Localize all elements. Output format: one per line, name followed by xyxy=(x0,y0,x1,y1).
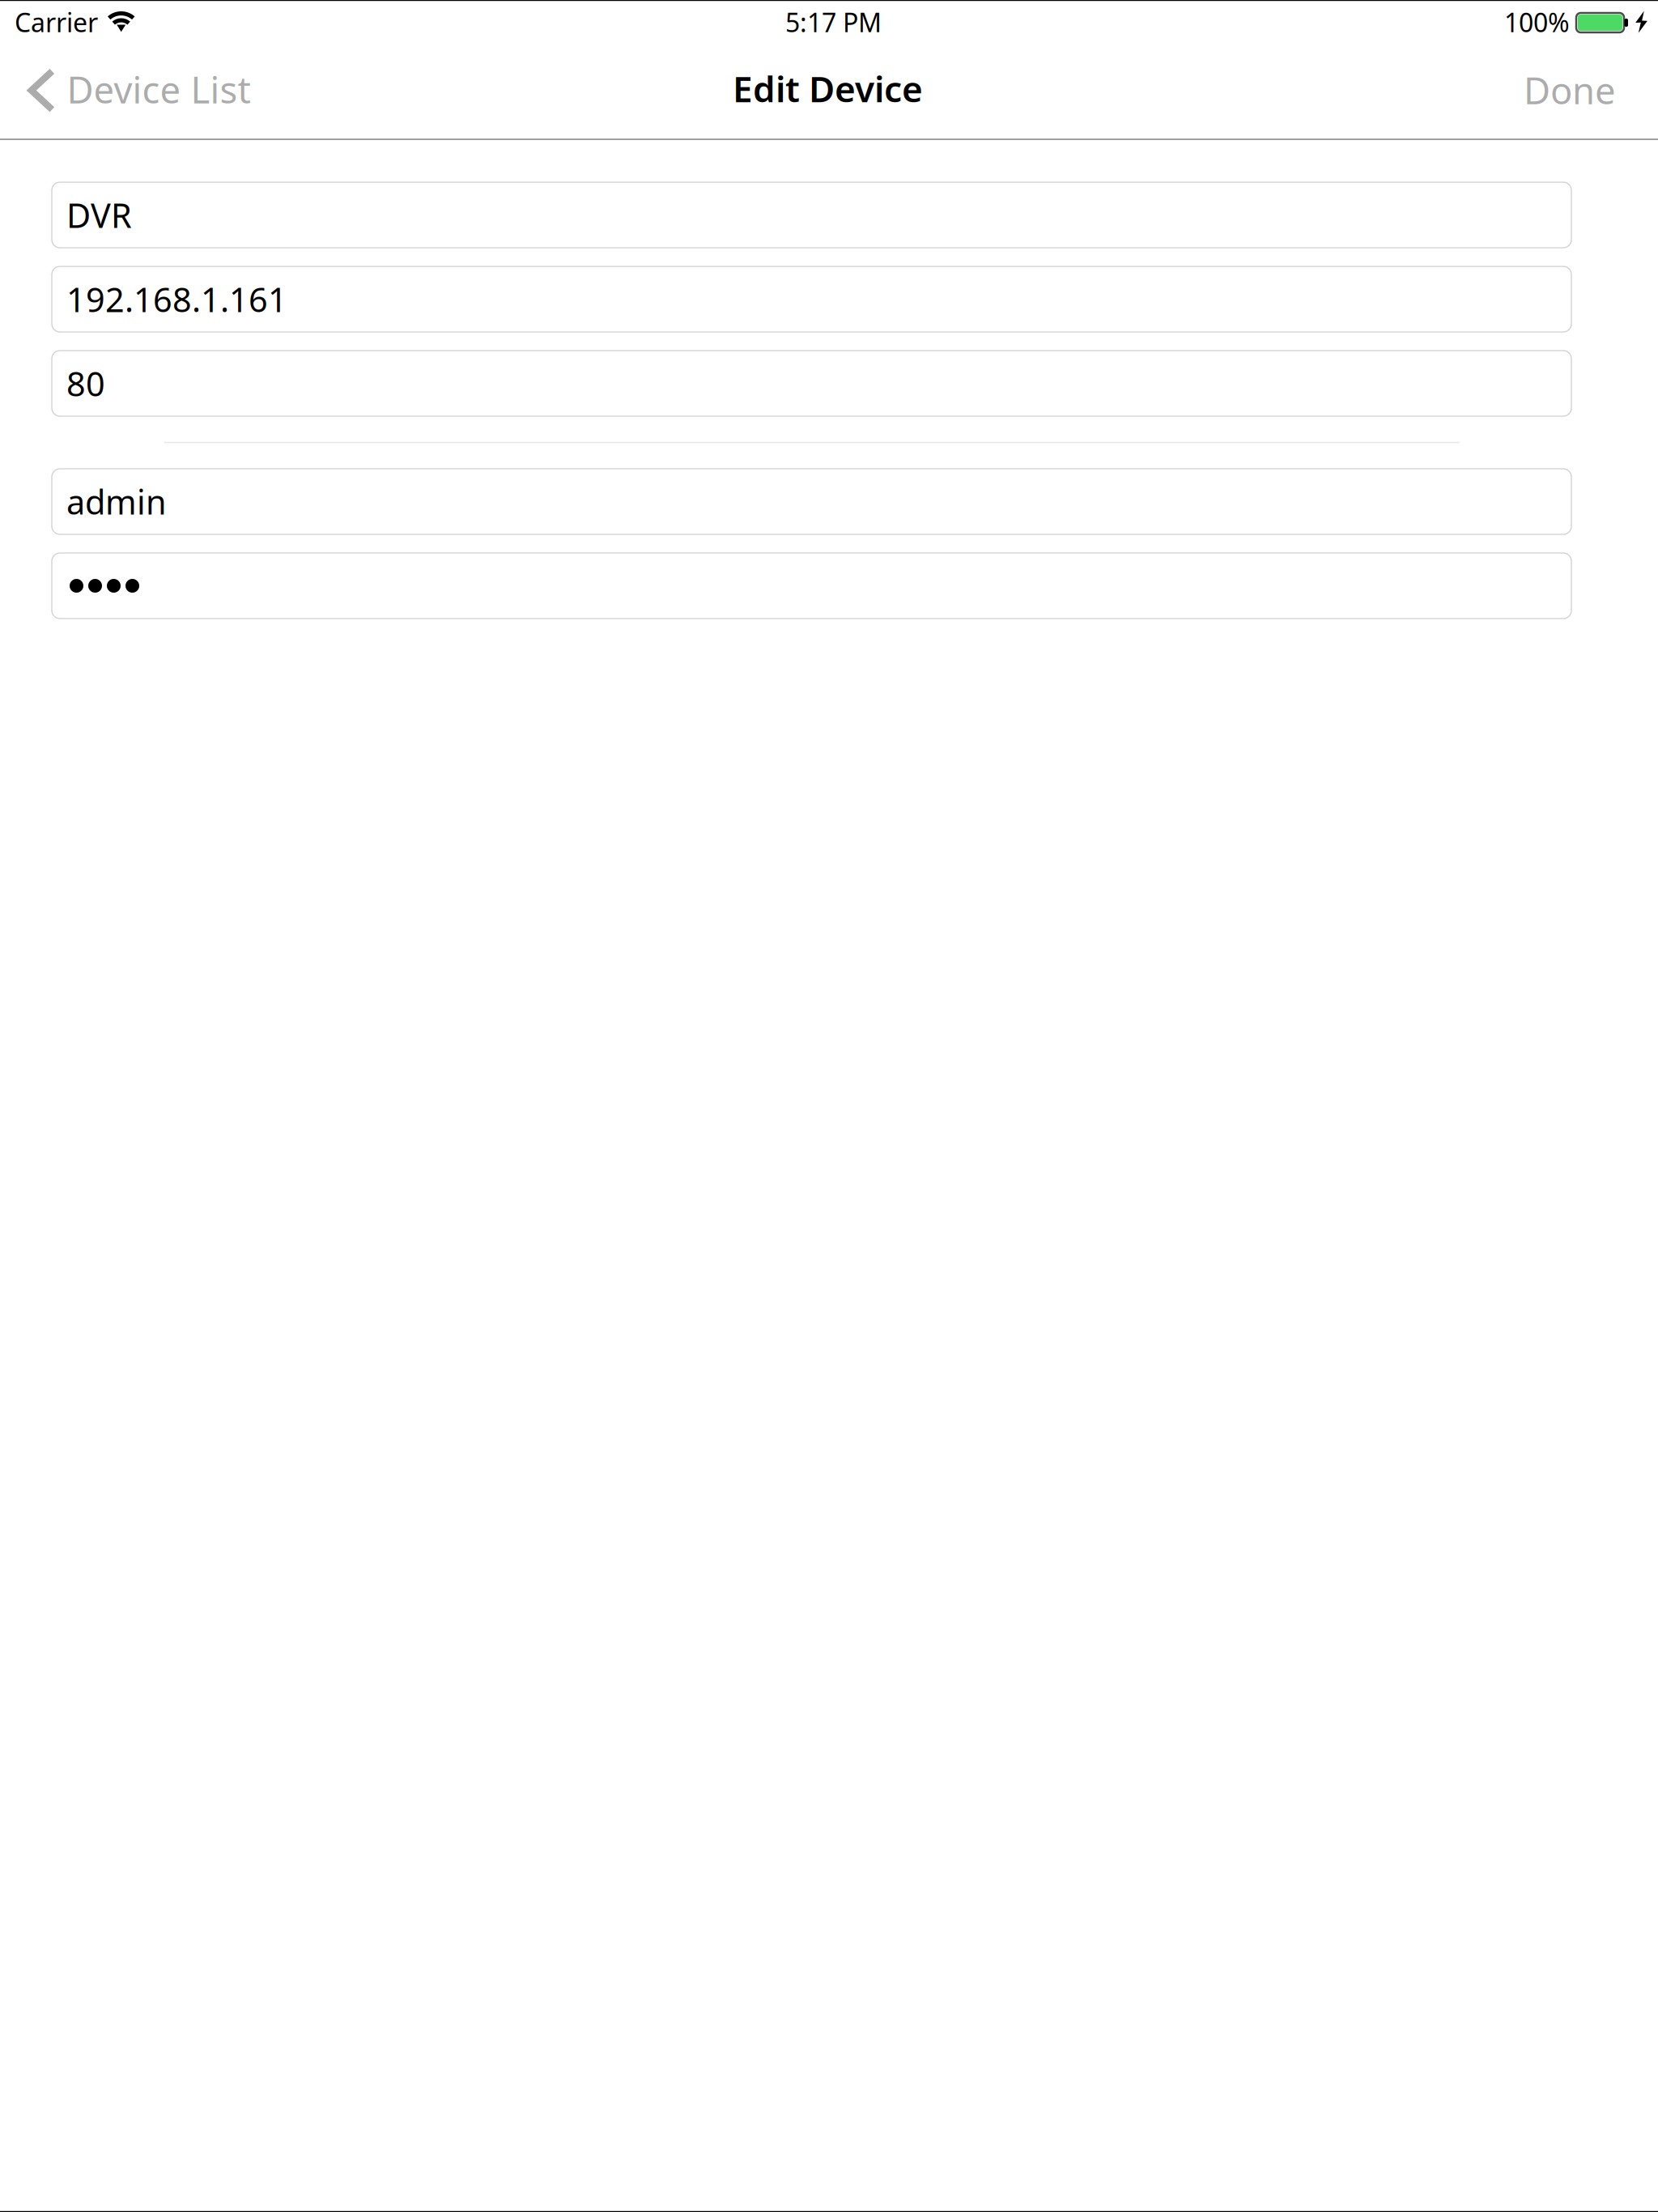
button[interactable]: Device List xyxy=(0,50,240,140)
staticText: 5:17 PM xyxy=(785,5,882,39)
staticText: Edit Device xyxy=(733,65,923,112)
staticText: 192.168.1.161 xyxy=(66,277,287,321)
staticText: 80 xyxy=(66,361,105,406)
staticText: DVR xyxy=(66,193,132,237)
staticText: Carrier xyxy=(15,5,98,39)
button[interactable]: Device name xyxy=(52,182,1571,248)
staticText: 100% xyxy=(1504,5,1570,39)
staticText: Done xyxy=(1524,66,1616,114)
staticText: admin xyxy=(66,479,167,524)
button[interactable]: Address xyxy=(52,266,1571,332)
staticText: Device List xyxy=(67,65,251,114)
button[interactable]: User name xyxy=(52,469,1571,534)
button[interactable]: Password xyxy=(52,553,1571,619)
button[interactable]: Done xyxy=(1503,50,1658,140)
button[interactable]: Port xyxy=(52,351,1571,416)
